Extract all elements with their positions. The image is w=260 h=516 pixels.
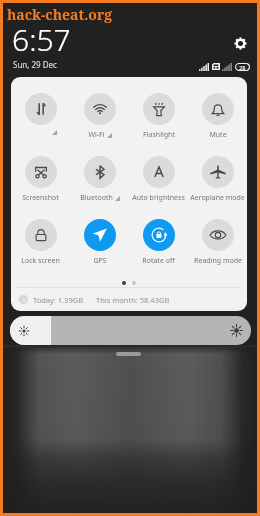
staticText: Screenshot xyxy=(22,193,59,203)
button[interactable]: Wi-Fi xyxy=(70,93,129,156)
button[interactable]: Flashlight xyxy=(129,93,188,156)
staticText: Flashlight xyxy=(143,130,175,140)
staticText: hack-cheat.org xyxy=(7,5,113,24)
button[interactable]: Bluetooth xyxy=(70,156,129,219)
button[interactable]: Brightness xyxy=(10,316,251,345)
button[interactable]: Auto brightness xyxy=(129,156,188,219)
staticText: Auto brightness xyxy=(132,193,185,203)
staticText: Sun, 29 Dec xyxy=(13,59,57,70)
staticText: Aeroplane mode xyxy=(190,193,245,203)
button[interactable]: Reading mode xyxy=(188,219,247,282)
staticText: Lock screen xyxy=(21,256,60,266)
button[interactable]: Aeroplane mode xyxy=(188,156,247,219)
staticText: 28 xyxy=(239,64,246,71)
button[interactable]: GPS xyxy=(70,219,129,282)
staticText: Wi-Fi xyxy=(88,130,105,140)
staticText: Mute xyxy=(209,130,227,140)
staticText: GPS xyxy=(93,256,107,266)
staticText: Bluetooth xyxy=(80,193,113,203)
button[interactable]: Screenshot xyxy=(11,156,70,219)
button[interactable]: Mute xyxy=(188,93,247,156)
staticText: Today: 1.39GB xyxy=(33,295,84,305)
staticText: 6:57 xyxy=(12,19,71,60)
button[interactable]: Settings xyxy=(234,37,247,50)
staticText: This month: 58.43GB xyxy=(96,295,170,305)
staticText: Reading mode xyxy=(194,256,242,266)
button[interactable] xyxy=(11,93,70,156)
button[interactable]: Rotate off xyxy=(129,219,188,282)
staticText: Rotate off xyxy=(142,256,175,266)
button[interactable]: Lock screen xyxy=(11,219,70,282)
